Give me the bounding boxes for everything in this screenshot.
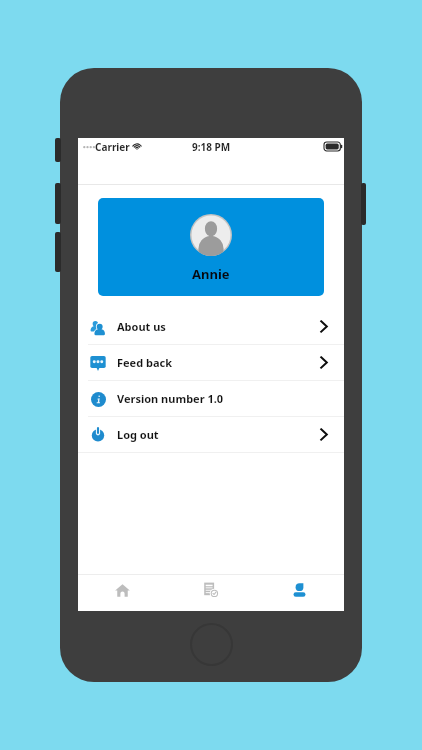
staticText: Log out	[117, 427, 159, 442]
staticText: Carrier	[95, 140, 130, 152]
button[interactable]: Orders	[166, 575, 255, 611]
staticText: About us	[117, 319, 166, 334]
staticText: Version number 1.0	[117, 391, 224, 406]
button[interactable]: Log out	[78, 417, 344, 452]
button[interactable]: Profile	[255, 575, 344, 611]
button[interactable]: About us	[78, 309, 344, 344]
staticText: Annie	[192, 265, 230, 283]
button[interactable]: Feed back	[78, 345, 344, 380]
staticText: 9:18 PM	[192, 140, 231, 152]
button[interactable]: Annie	[98, 198, 324, 296]
button[interactable]: Version number 1.0	[78, 381, 344, 416]
staticText: Feed back	[117, 355, 173, 370]
button[interactable]: Home	[78, 575, 166, 611]
